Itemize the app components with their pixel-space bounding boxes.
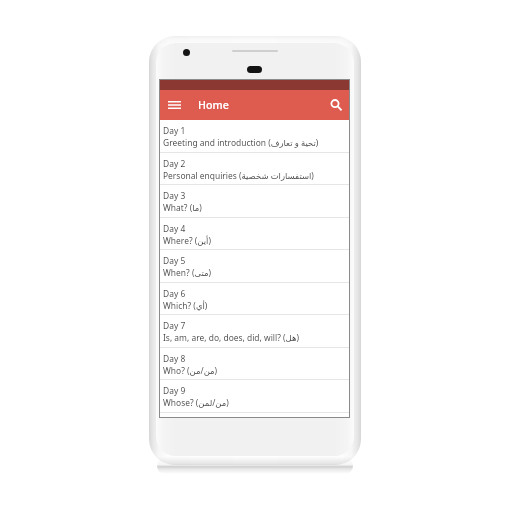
button[interactable]: Search — [323, 90, 350, 120]
staticText: Whose? (من/لمن) — [163, 397, 229, 409]
staticText: Home — [198, 98, 229, 113]
staticText: Personal enquiries (استفسارات شخصية) — [163, 170, 314, 182]
staticText: Day 2 — [163, 158, 186, 170]
staticText: Where? (أين) — [163, 235, 211, 247]
button[interactable]: Day 8 — [159, 348, 350, 381]
staticText: Is, am, are, do, does, did, will? (هل) — [163, 332, 299, 344]
staticText: Greeting and introduction (تحية و تعارف) — [163, 137, 319, 149]
button[interactable]: Day 1 — [159, 120, 350, 153]
staticText: Day 9 — [163, 385, 186, 397]
staticText: Day 6 — [163, 288, 186, 300]
button[interactable]: Day 5 — [159, 250, 350, 283]
button[interactable]: Day 7 — [159, 315, 350, 348]
staticText: Which? (أي) — [163, 300, 208, 312]
staticText: Day 8 — [163, 353, 186, 365]
staticText: Day 1 — [163, 125, 186, 137]
staticText: Day 7 — [163, 320, 186, 332]
button[interactable]: Day 9 — [159, 380, 350, 413]
staticText: Day 3 — [163, 190, 186, 202]
staticText: Day 5 — [163, 255, 186, 267]
button[interactable]: Day 6 — [159, 283, 350, 316]
button[interactable]: Day 2 — [159, 153, 350, 186]
staticText: When? (متى) — [163, 267, 212, 279]
staticText: What? (ما) — [163, 202, 202, 214]
staticText: Day 4 — [163, 223, 186, 235]
button[interactable]: Day 4 — [159, 218, 350, 251]
button[interactable]: Day 3 — [159, 185, 350, 218]
staticText: Who? (من/من) — [163, 365, 218, 377]
button[interactable]: Open navigation drawer — [159, 90, 189, 120]
